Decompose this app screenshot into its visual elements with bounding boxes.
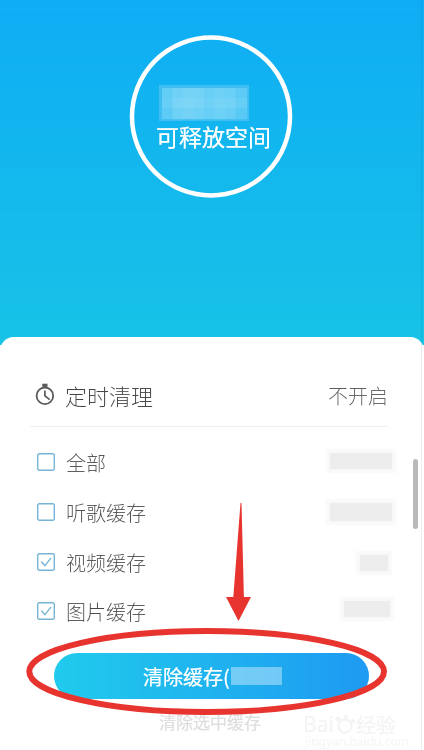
staticText: 定时清理 bbox=[65, 379, 154, 411]
staticText: 经验 bbox=[356, 710, 396, 739]
button[interactable]: 听歌缓存 bbox=[0, 487, 424, 537]
button[interactable]: 清除缓存( bbox=[54, 653, 369, 699]
other: Scheduled clean bbox=[33, 384, 55, 406]
button[interactable]: Scheduled clean bbox=[0, 366, 424, 424]
staticText: 图片缓存 bbox=[66, 597, 146, 626]
button[interactable]: 图片缓存 bbox=[0, 586, 424, 636]
staticText: 清除选中缓存 bbox=[159, 709, 261, 734]
staticText: jingyan.baidu.com bbox=[305, 733, 409, 749]
staticText: 全部 bbox=[66, 448, 106, 477]
staticText: 可释放空间 bbox=[156, 119, 271, 152]
button[interactable]: 全部 bbox=[0, 437, 424, 487]
staticText: 听歌缓存 bbox=[66, 498, 146, 527]
staticText: 不开启 bbox=[328, 381, 388, 410]
button[interactable]: 视频缓存 bbox=[0, 537, 424, 587]
staticText: 清除缓存( bbox=[143, 662, 230, 691]
staticText: Bai bbox=[303, 710, 334, 739]
staticText: 视频缓存 bbox=[66, 548, 146, 577]
